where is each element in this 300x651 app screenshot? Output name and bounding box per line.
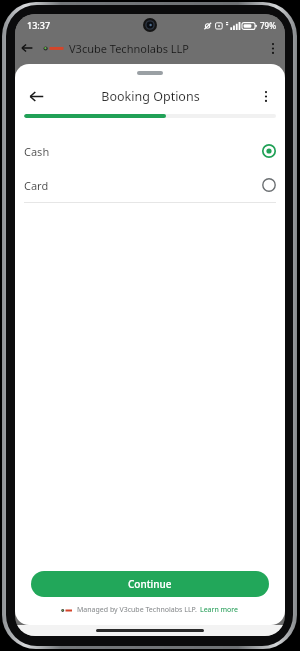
staticText: Continue [128, 577, 172, 591]
staticText: Booking Options [101, 88, 200, 105]
button[interactable]: Continue [31, 571, 269, 597]
staticText: Card [24, 178, 49, 193]
button[interactable]: Learn more [200, 605, 239, 615]
button[interactable]: Cash [15, 134, 285, 168]
button[interactable]: Card [15, 168, 285, 202]
staticText: Learn more [200, 605, 239, 615]
staticText: Cash [24, 144, 50, 159]
button[interactable]: More options [261, 36, 285, 60]
staticText: V3cube Technolabs LLP [69, 41, 189, 56]
button[interactable]: More options [252, 82, 280, 110]
staticText: 79% [260, 20, 276, 31]
button[interactable]: Close [15, 36, 39, 60]
button[interactable]: Back [21, 81, 51, 111]
staticText: Managed by V3cube Technolabs LLP. [77, 605, 197, 615]
staticText: 13:37 [27, 19, 51, 31]
